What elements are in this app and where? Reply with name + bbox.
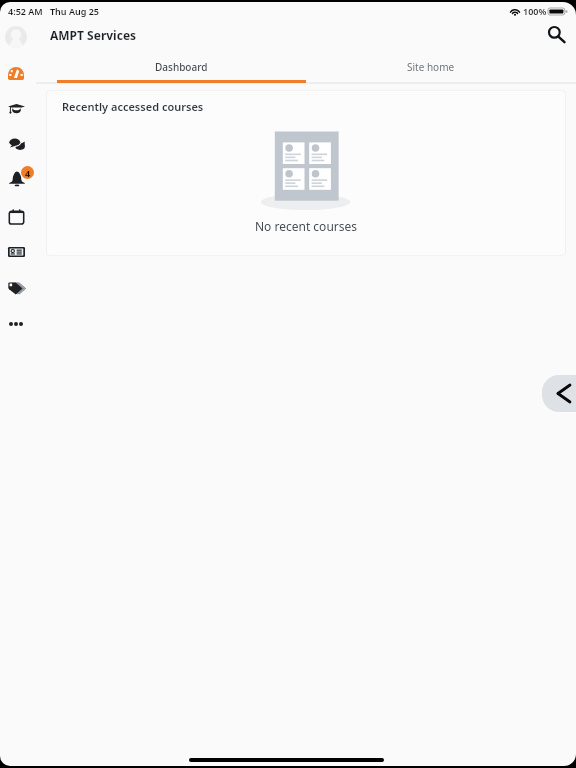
button[interactable]: Account [5, 26, 27, 48]
button[interactable]: Site home [306, 52, 556, 83]
staticText: AMPT Services [50, 27, 137, 43]
staticText: No recent courses [46, 218, 566, 234]
button[interactable]: Tags [0, 271, 33, 305]
staticText: 4 [25, 167, 31, 179]
staticText: Dashboard [155, 60, 208, 74]
button[interactable]: Calendar [0, 199, 33, 233]
button[interactable]: Contacts [0, 235, 33, 269]
button[interactable]: My courses [0, 92, 33, 126]
staticText: Site home [407, 60, 455, 74]
button[interactable]: Messages [0, 127, 33, 161]
button[interactable]: Dashboard [57, 52, 306, 83]
button[interactable]: Notifications [0, 162, 33, 196]
button[interactable]: Open navigation drawer [542, 375, 576, 412]
button[interactable]: More [0, 307, 33, 341]
staticText: 4:52 AM [8, 5, 43, 17]
staticText: Recently accessed courses [62, 99, 204, 114]
staticText: 100% [523, 5, 547, 17]
button[interactable]: Dashboard [0, 56, 33, 90]
button[interactable]: Search [545, 23, 569, 47]
staticText: Thu Aug 25 [50, 5, 100, 17]
